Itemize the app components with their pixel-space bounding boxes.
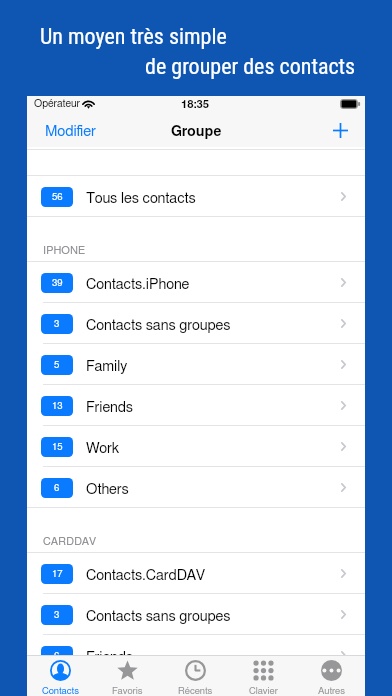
button[interactable]: Autres [297, 656, 365, 696]
staticText: CARDDAV [43, 536, 97, 547]
button[interactable]: 39 [27, 262, 365, 302]
staticText: Friends [86, 650, 133, 665]
staticText: Un moyen très simple [40, 24, 227, 50]
button[interactable]: Ajouter un groupe [316, 118, 365, 145]
staticText: Favoris [112, 686, 143, 696]
staticText: 6 [54, 483, 60, 493]
staticText: Contacts sans groupes [86, 318, 231, 333]
staticText: Work [86, 441, 120, 456]
staticText: Modifier [45, 124, 96, 139]
staticText: Contacts.iPhone [86, 277, 190, 292]
staticText: 56 [52, 192, 63, 202]
staticText: 18:35 [181, 99, 210, 110]
staticText: Récents [178, 686, 213, 696]
button[interactable]: 6 [27, 467, 365, 507]
staticText: Autres [318, 686, 345, 696]
staticText: 17 [52, 569, 63, 579]
button[interactable]: Favoris [94, 656, 161, 696]
staticText: 39 [52, 278, 63, 288]
button[interactable]: 13 [27, 385, 365, 425]
staticText: Family [86, 359, 128, 374]
button[interactable]: Contacts [27, 656, 94, 696]
button[interactable]: 56 [27, 176, 365, 216]
staticText: 13 [52, 401, 63, 411]
staticText: 5 [54, 360, 60, 370]
staticText: Others [86, 482, 129, 497]
staticText: Opérateur [34, 99, 81, 110]
button[interactable]: Récents [161, 656, 229, 696]
staticText: Groupe [171, 125, 222, 139]
button[interactable]: Modifier [27, 118, 114, 145]
staticText: IPHONE [43, 245, 86, 256]
staticText: Contacts.CardDAV [86, 568, 206, 583]
staticText: 6 [54, 651, 60, 661]
button[interactable]: 3 [27, 594, 365, 634]
staticText: Contacts [42, 686, 79, 696]
staticText: 15 [52, 442, 63, 452]
staticText: Friends [86, 400, 133, 415]
staticText: 3 [54, 319, 60, 329]
button[interactable]: 15 [27, 426, 365, 466]
staticText: Clavier [249, 686, 278, 696]
button[interactable]: 3 [27, 303, 365, 343]
staticText: de grouper des contacts [145, 54, 356, 80]
staticText: Contacts sans groupes [86, 609, 231, 624]
button[interactable]: 17 [27, 553, 365, 593]
button[interactable]: 6 [27, 635, 365, 675]
staticText: Tous les contacts [86, 191, 196, 206]
staticText: 3 [54, 610, 60, 620]
button[interactable]: 5 [27, 344, 365, 384]
button[interactable]: Clavier [229, 656, 297, 696]
